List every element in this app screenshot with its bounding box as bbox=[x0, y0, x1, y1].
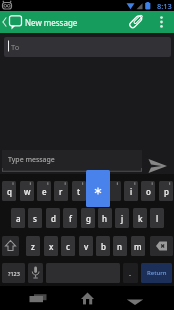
staticText: d bbox=[51, 213, 56, 224]
button[interactable] bbox=[72, 286, 104, 310]
button[interactable]: To bbox=[4, 37, 171, 57]
staticText: y bbox=[94, 186, 99, 197]
button[interactable]: r bbox=[54, 181, 68, 201]
button[interactable]: New message bbox=[25, 17, 78, 28]
button[interactable]: a bbox=[11, 208, 25, 228]
staticText: v bbox=[84, 241, 89, 252]
staticText: e bbox=[42, 186, 47, 197]
staticText: p bbox=[164, 186, 169, 197]
staticText: k bbox=[138, 213, 143, 224]
staticText: o bbox=[146, 186, 151, 197]
button[interactable] bbox=[152, 11, 174, 33]
staticText: x bbox=[49, 241, 54, 252]
button[interactable] bbox=[150, 236, 173, 256]
button[interactable]: y bbox=[89, 181, 103, 201]
staticText: h bbox=[102, 213, 108, 224]
staticText: Return bbox=[147, 269, 167, 277]
button[interactable] bbox=[2, 236, 19, 256]
button[interactable]: i bbox=[124, 181, 138, 201]
staticText: n bbox=[117, 241, 123, 252]
button[interactable]: z bbox=[26, 236, 40, 256]
staticText: w bbox=[24, 186, 31, 197]
button[interactable]: m bbox=[131, 236, 145, 256]
button[interactable]: t bbox=[72, 181, 86, 201]
staticText: l bbox=[156, 213, 159, 224]
button[interactable]: x bbox=[44, 236, 58, 256]
button[interactable]: g bbox=[81, 208, 95, 228]
button[interactable]: n bbox=[113, 236, 127, 256]
staticText: Type message bbox=[8, 155, 55, 165]
button[interactable]: l bbox=[150, 208, 164, 228]
staticText: r bbox=[59, 186, 63, 197]
button[interactable]: v bbox=[79, 236, 93, 256]
button[interactable]: j bbox=[115, 208, 129, 228]
button[interactable]: . bbox=[123, 263, 138, 283]
staticText: j bbox=[121, 213, 124, 224]
staticText: i bbox=[130, 186, 133, 197]
button[interactable]: o bbox=[141, 181, 155, 201]
staticText: ?123 bbox=[8, 270, 20, 277]
staticText: z bbox=[31, 241, 35, 252]
button[interactable]: d bbox=[46, 208, 60, 228]
button[interactable]: c bbox=[61, 236, 75, 256]
staticText: c bbox=[66, 241, 70, 252]
button[interactable]: e bbox=[37, 181, 51, 201]
staticText: New message bbox=[25, 17, 78, 28]
button[interactable] bbox=[86, 170, 110, 207]
staticText: . bbox=[129, 268, 132, 278]
button[interactable]: b bbox=[96, 236, 110, 256]
button[interactable]: Return bbox=[141, 263, 172, 283]
button[interactable]: q bbox=[2, 181, 16, 201]
staticText: 8:13 bbox=[157, 1, 172, 11]
button[interactable]: p bbox=[159, 181, 173, 201]
button[interactable]: h bbox=[98, 208, 112, 228]
button[interactable]: k bbox=[133, 208, 147, 228]
button[interactable] bbox=[107, 181, 121, 201]
staticText: q bbox=[7, 186, 12, 197]
staticText: t bbox=[77, 186, 81, 197]
staticText: s bbox=[33, 213, 37, 224]
button[interactable] bbox=[26, 286, 58, 310]
button[interactable]: f bbox=[63, 208, 77, 228]
button[interactable] bbox=[28, 263, 43, 283]
button[interactable] bbox=[144, 152, 172, 174]
button[interactable]: w bbox=[20, 181, 34, 201]
staticText: a bbox=[16, 213, 21, 224]
staticText: m bbox=[134, 241, 142, 252]
button[interactable]: s bbox=[28, 208, 42, 228]
button[interactable]: Type message bbox=[2, 150, 142, 172]
staticText: g bbox=[86, 213, 91, 224]
button[interactable]: ?123 bbox=[2, 263, 25, 283]
staticText: f bbox=[69, 213, 72, 224]
button[interactable] bbox=[116, 286, 148, 310]
staticText: To bbox=[11, 42, 20, 52]
button[interactable] bbox=[124, 11, 148, 33]
staticText: b bbox=[101, 241, 106, 252]
